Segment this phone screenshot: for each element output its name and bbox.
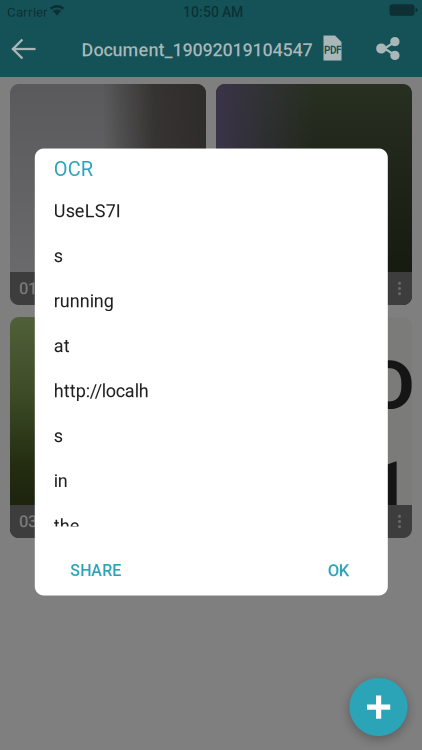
staticText: http://localh bbox=[54, 380, 149, 402]
staticText: s bbox=[54, 425, 63, 447]
staticText: at bbox=[54, 335, 70, 357]
staticText: the bbox=[54, 515, 80, 537]
button[interactable]: 01 bbox=[10, 84, 206, 305]
button[interactable]: D bbox=[216, 317, 412, 538]
staticText: D bbox=[369, 345, 414, 426]
staticText: Carrier bbox=[7, 4, 48, 20]
staticText: in bbox=[54, 470, 68, 492]
button[interactable]: Back bbox=[1, 27, 45, 71]
staticText: 10:50 AM bbox=[183, 4, 243, 20]
staticText: UseLS7I bbox=[54, 200, 121, 222]
staticText: 01 bbox=[19, 279, 37, 298]
staticText: PDF bbox=[324, 44, 341, 56]
staticText: OCR bbox=[54, 157, 93, 181]
button[interactable]: 03 bbox=[10, 317, 206, 538]
button[interactable]: Add page bbox=[349, 678, 407, 736]
staticText: 1 bbox=[369, 446, 409, 527]
button[interactable]: Document_19092019104547 bbox=[79, 28, 315, 72]
staticText: OK bbox=[328, 561, 350, 580]
button[interactable]: Share bbox=[366, 26, 410, 70]
button[interactable]: 02 bbox=[216, 84, 412, 305]
staticText: s bbox=[54, 245, 63, 267]
button[interactable]: SHARE bbox=[56, 552, 136, 588]
staticText: running bbox=[54, 290, 114, 312]
staticText: Document_19092019104547 bbox=[81, 39, 312, 61]
button[interactable]: OK bbox=[313, 552, 365, 588]
button[interactable]: Export as PDF bbox=[312, 26, 352, 70]
staticText: SHARE bbox=[70, 561, 121, 580]
staticText: 03 bbox=[19, 512, 37, 531]
